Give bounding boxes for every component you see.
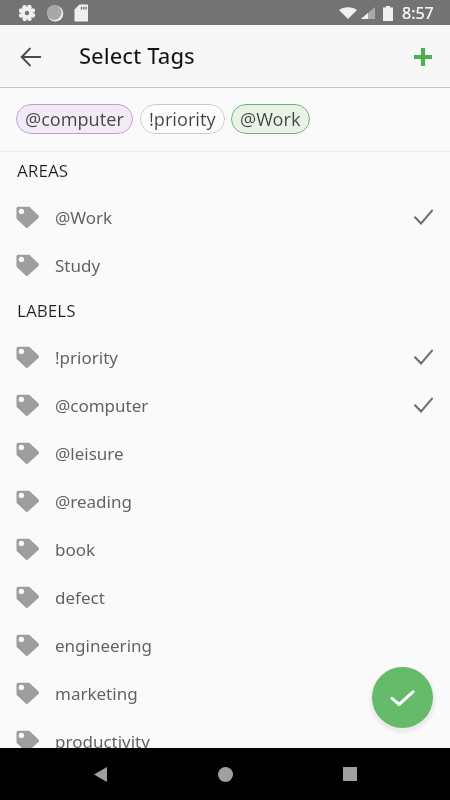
button[interactable]: book <box>0 525 450 573</box>
staticText: 8:57 <box>402 2 434 24</box>
button[interactable]: marketing <box>0 669 450 717</box>
staticText: @Work <box>240 107 301 132</box>
button[interactable]: engineering <box>0 621 450 669</box>
staticText: !priority <box>55 346 118 369</box>
button[interactable]: defect <box>0 573 450 621</box>
button[interactable]: Add tag <box>402 36 444 78</box>
button[interactable]: Study <box>0 241 450 289</box>
staticText: defect <box>55 586 105 609</box>
button[interactable]: @Work <box>231 104 310 134</box>
staticText: !priority <box>149 107 216 132</box>
staticText: @computer <box>25 107 124 132</box>
staticText: LABELS <box>17 299 76 322</box>
staticText: @reading <box>55 490 132 513</box>
button[interactable]: Confirm <box>372 667 433 728</box>
staticText: AREAS <box>17 159 69 182</box>
staticText: engineering <box>55 634 152 657</box>
button[interactable]: @Work <box>0 193 450 241</box>
button[interactable]: @leisure <box>0 429 450 477</box>
staticText: book <box>55 538 96 561</box>
staticText: Select Tags <box>79 40 195 70</box>
button[interactable]: @reading <box>0 477 450 525</box>
button[interactable]: Back <box>10 36 52 78</box>
button[interactable]: Home <box>200 749 250 799</box>
staticText: Study <box>55 254 101 277</box>
button[interactable]: Recents <box>325 749 375 799</box>
staticText: productivity <box>55 730 150 748</box>
staticText: @computer <box>55 394 149 417</box>
staticText: @leisure <box>55 442 124 465</box>
button[interactable]: @computer <box>16 104 133 134</box>
button[interactable]: !priority <box>140 104 225 134</box>
button[interactable]: @computer <box>0 381 450 429</box>
button[interactable]: Back <box>75 749 125 799</box>
button[interactable]: !priority <box>0 333 450 381</box>
staticText: marketing <box>55 682 138 705</box>
button[interactable]: productivity <box>0 717 450 748</box>
staticText: @Work <box>55 206 113 229</box>
